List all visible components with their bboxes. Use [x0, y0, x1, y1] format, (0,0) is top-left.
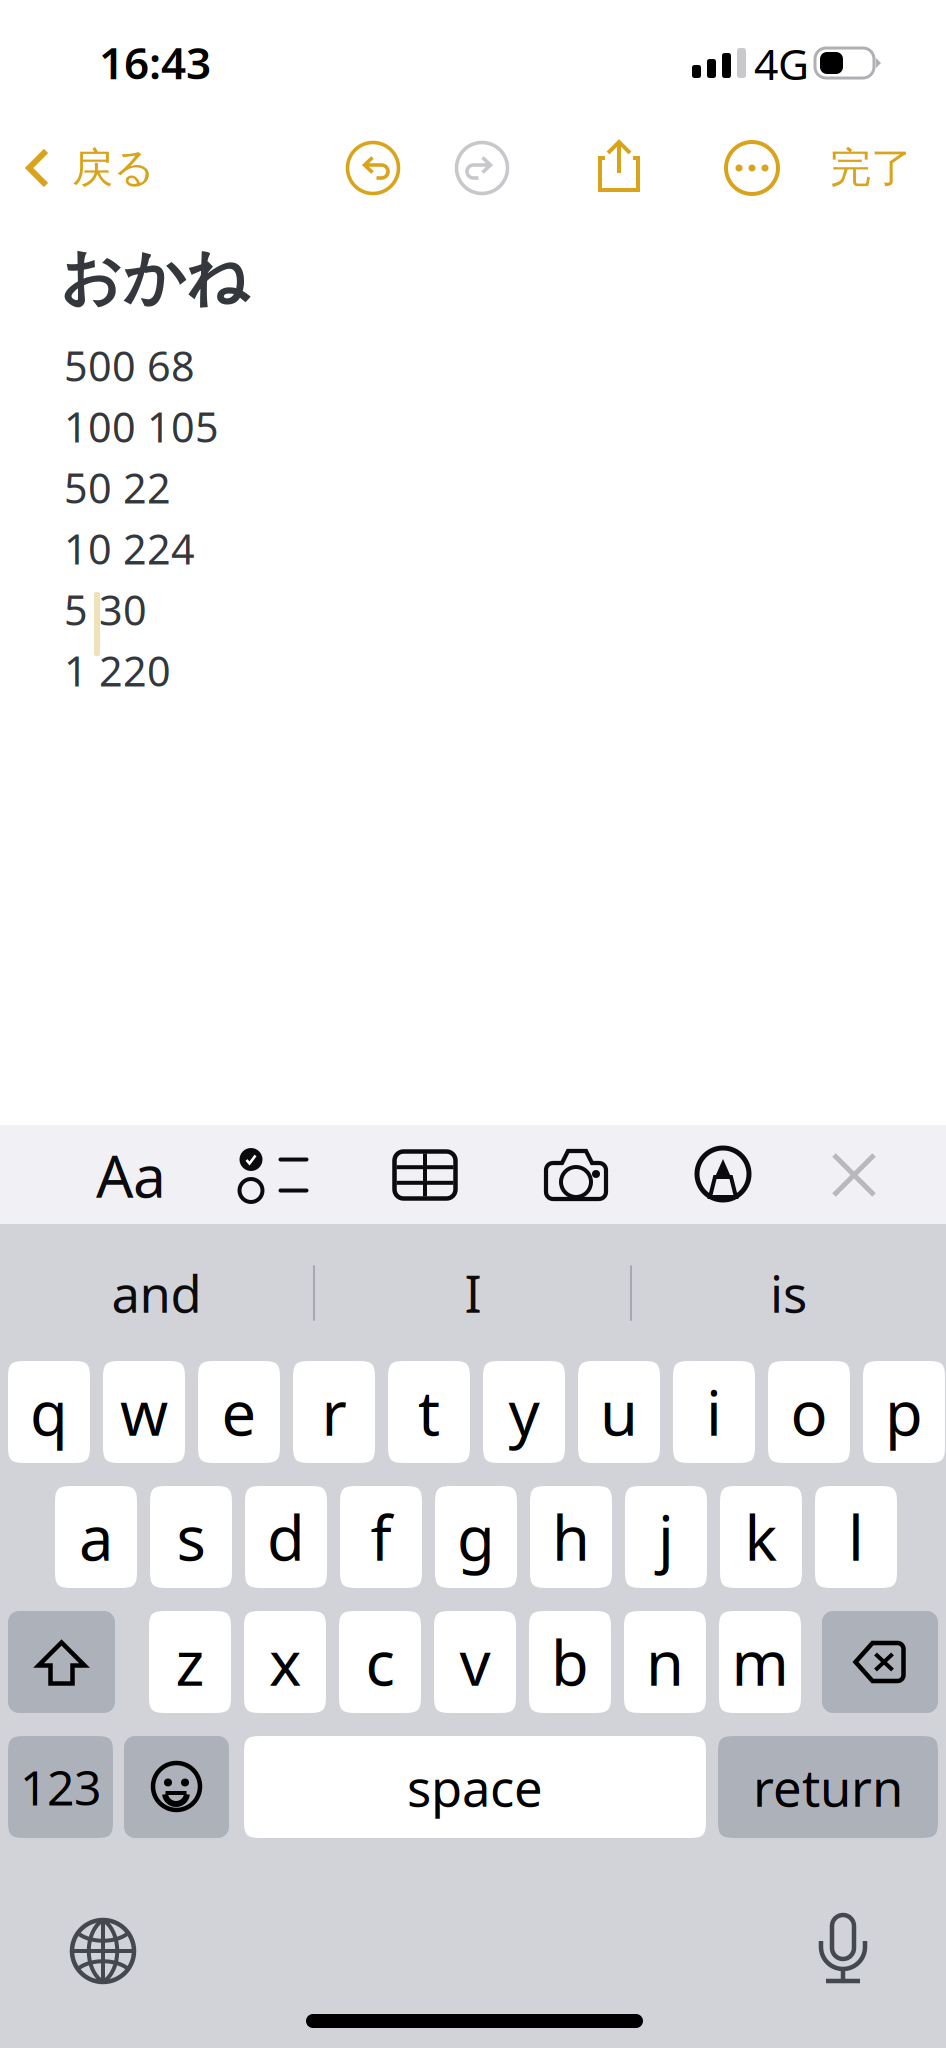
- button[interactable]: return: [718, 1736, 938, 1838]
- button[interactable]: I: [316, 1245, 630, 1341]
- button[interactable]: t: [388, 1361, 470, 1463]
- button[interactable]: Markup: [677, 1129, 769, 1221]
- staticText: 123: [20, 1755, 101, 1819]
- button[interactable]: Table: [379, 1129, 471, 1221]
- button[interactable]: g: [435, 1486, 517, 1588]
- staticText: e: [221, 1371, 256, 1453]
- staticText: return: [753, 1753, 903, 1821]
- button[interactable]: k: [720, 1486, 802, 1588]
- button[interactable]: o: [768, 1361, 850, 1463]
- button[interactable]: q: [8, 1361, 90, 1463]
- staticText: is: [770, 1259, 807, 1327]
- button[interactable]: Emoji: [124, 1736, 229, 1838]
- staticText: 5 30: [64, 582, 147, 637]
- button[interactable]: x: [244, 1611, 326, 1713]
- staticText: l: [848, 1496, 864, 1578]
- staticText: r: [321, 1371, 346, 1453]
- button[interactable]: v: [434, 1611, 516, 1713]
- button[interactable]: Text format: [85, 1129, 177, 1221]
- button[interactable]: space: [244, 1736, 706, 1838]
- staticText: s: [176, 1496, 205, 1578]
- button[interactable]: Next keyboard: [57, 1905, 149, 1997]
- staticText: x: [269, 1621, 301, 1703]
- staticText: n: [646, 1621, 684, 1703]
- button[interactable]: Redo: [454, 140, 510, 196]
- staticText: b: [551, 1621, 589, 1703]
- button[interactable]: Checklist: [228, 1129, 320, 1221]
- button[interactable]: Share: [593, 138, 645, 196]
- button[interactable]: 完了: [830, 120, 946, 216]
- staticText: q: [30, 1371, 68, 1453]
- staticText: z: [175, 1621, 204, 1703]
- button[interactable]: z: [149, 1611, 231, 1713]
- button[interactable]: 戻る: [0, 120, 173, 216]
- staticText: k: [744, 1496, 777, 1578]
- staticText: i: [706, 1371, 722, 1453]
- button[interactable]: Camera: [530, 1129, 622, 1221]
- button[interactable]: and: [0, 1245, 313, 1341]
- staticText: 10 224: [64, 521, 195, 576]
- staticText: o: [790, 1371, 827, 1453]
- staticText: 16:43: [99, 33, 211, 91]
- button[interactable]: w: [103, 1361, 185, 1463]
- staticText: h: [552, 1496, 590, 1578]
- staticText: 1 220: [64, 643, 171, 698]
- button[interactable]: h: [530, 1486, 612, 1588]
- staticText: c: [365, 1621, 394, 1703]
- staticText: y: [508, 1371, 539, 1453]
- staticText: おかね: [60, 240, 249, 315]
- button[interactable]: y: [483, 1361, 565, 1463]
- button[interactable]: r: [293, 1361, 375, 1463]
- button[interactable]: b: [529, 1611, 611, 1713]
- staticText: d: [267, 1496, 305, 1578]
- button[interactable]: Close keyboard: [808, 1129, 900, 1221]
- button[interactable]: m: [719, 1611, 801, 1713]
- button[interactable]: j: [625, 1486, 707, 1588]
- staticText: 4G: [754, 35, 809, 92]
- button[interactable]: Undo: [345, 140, 401, 196]
- staticText: 50 22: [64, 460, 171, 515]
- button[interactable]: 123: [8, 1736, 113, 1838]
- staticText: u: [600, 1371, 638, 1453]
- staticText: g: [457, 1496, 495, 1578]
- staticText: and: [111, 1259, 201, 1327]
- staticText: a: [79, 1496, 113, 1578]
- button[interactable]: c: [339, 1611, 421, 1713]
- staticText: 完了: [830, 143, 912, 193]
- button[interactable]: u: [578, 1361, 660, 1463]
- button[interactable]: Shift: [8, 1611, 115, 1713]
- staticText: w: [120, 1371, 168, 1453]
- staticText: p: [885, 1371, 923, 1453]
- staticText: f: [370, 1496, 391, 1578]
- button[interactable]: f: [340, 1486, 422, 1588]
- staticText: m: [731, 1621, 788, 1703]
- staticText: 500 68: [64, 338, 195, 393]
- staticText: 100 105: [64, 399, 219, 454]
- staticText: Aa: [96, 1136, 166, 1214]
- button[interactable]: Delete: [822, 1611, 938, 1713]
- staticText: space: [407, 1753, 543, 1821]
- staticText: I: [464, 1259, 481, 1327]
- staticText: 戻る: [72, 143, 155, 193]
- staticText: v: [459, 1621, 490, 1703]
- button[interactable]: Dictate: [797, 1903, 889, 1995]
- staticText: j: [658, 1496, 674, 1578]
- button[interactable]: n: [624, 1611, 706, 1713]
- button[interactable]: e: [198, 1361, 280, 1463]
- staticText: t: [418, 1371, 440, 1453]
- button[interactable]: p: [863, 1361, 945, 1463]
- button[interactable]: l: [815, 1486, 897, 1588]
- button[interactable]: i: [673, 1361, 755, 1463]
- button[interactable]: d: [245, 1486, 327, 1588]
- button[interactable]: is: [632, 1245, 945, 1341]
- button[interactable]: a: [55, 1486, 137, 1588]
- button[interactable]: s: [150, 1486, 232, 1588]
- button[interactable]: More: [724, 140, 780, 196]
